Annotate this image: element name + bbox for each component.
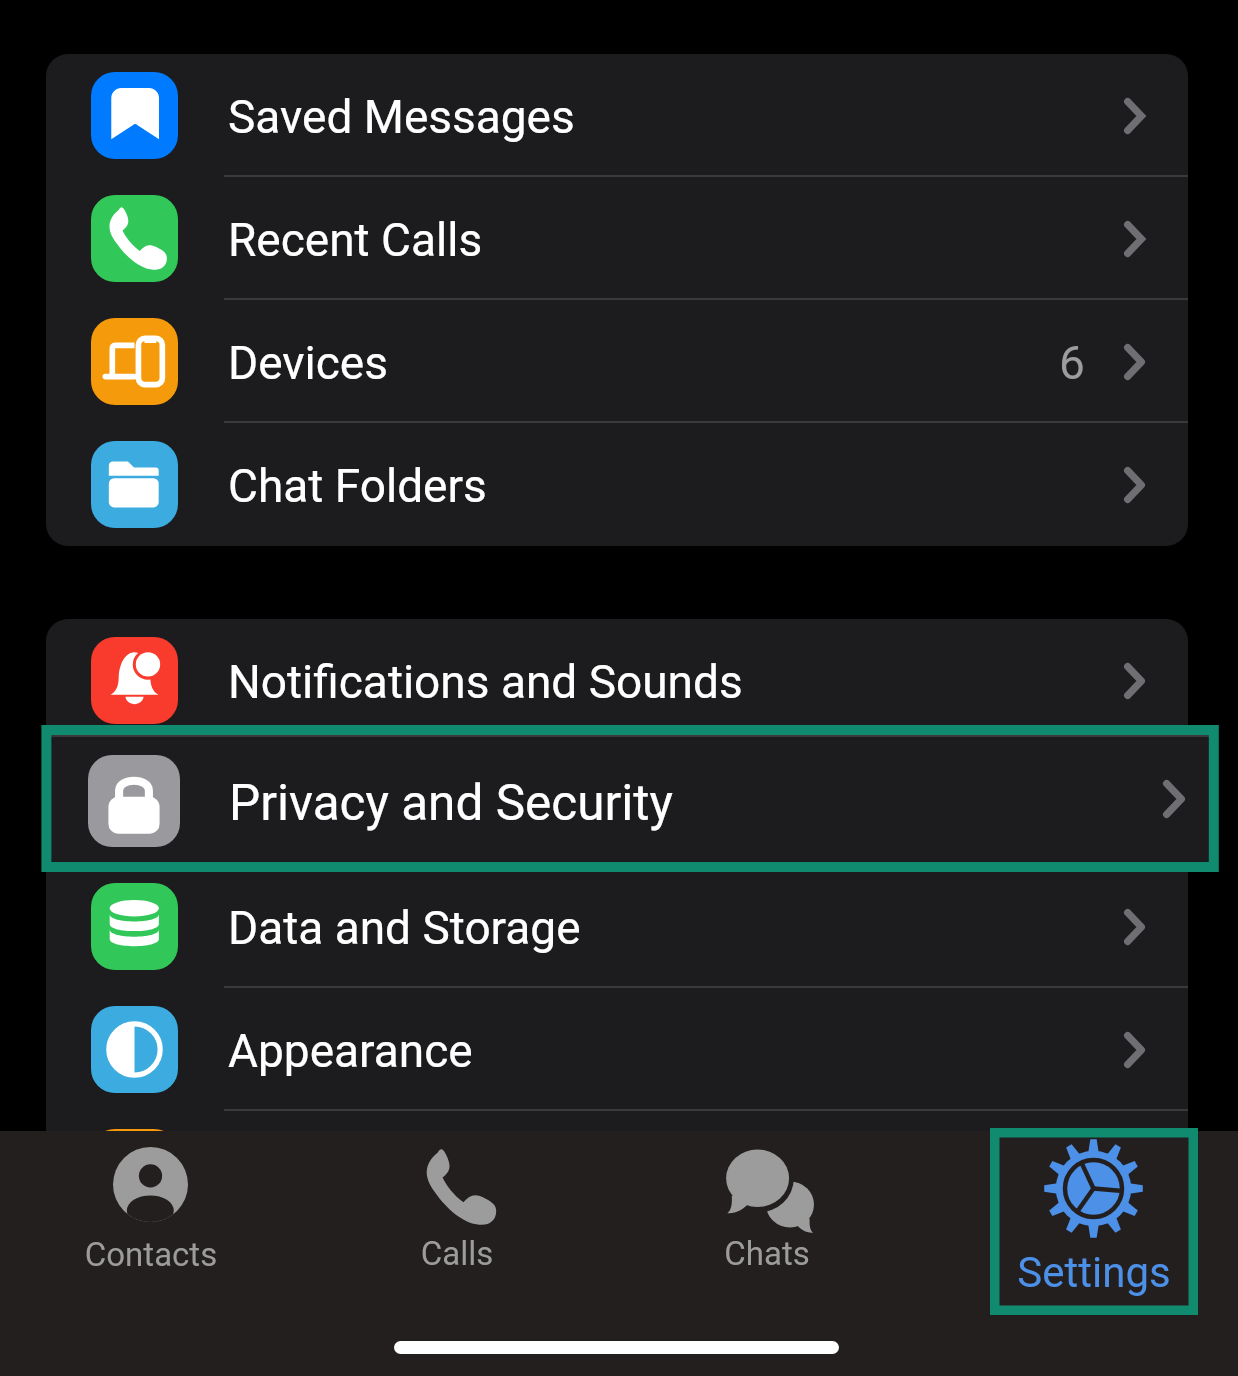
other: Chats (720, 1143, 814, 1237)
other: Contacts (113, 1147, 188, 1222)
staticText: Chats (567, 1234, 967, 1273)
button[interactable]: Language (46, 1111, 1188, 1234)
button[interactable] (939, 1131, 1238, 1376)
staticText: 6 (1059, 336, 1085, 390)
staticText: Recent Calls (228, 213, 483, 267)
button[interactable]: Chat Folders (46, 423, 1188, 546)
staticText: Notifications and Sounds (228, 655, 743, 709)
staticText: Devices (228, 336, 388, 390)
button[interactable] (0, 1131, 306, 1376)
button[interactable]: Data and Storage (46, 865, 1188, 988)
staticText: Calls (257, 1234, 657, 1273)
button[interactable]: Saved Messages (46, 54, 1188, 177)
staticText: Privacy and Security (228, 778, 641, 832)
staticText: Contacts (0, 1235, 351, 1274)
staticText: Chat Folders (228, 459, 487, 513)
staticText: Saved Messages (228, 90, 575, 144)
staticText: Appearance (228, 1024, 473, 1078)
button[interactable]: Recent Calls (46, 177, 1188, 300)
button[interactable] (302, 1131, 612, 1376)
staticText: Data and Storage (228, 901, 581, 955)
button[interactable]: Privacy and Security (46, 742, 1188, 865)
other: Settings (1044, 1139, 1143, 1238)
button[interactable]: Appearance (46, 988, 1188, 1111)
button[interactable]: Devices (46, 300, 1188, 423)
button[interactable]: Privacy and Security (51, 735, 1209, 863)
other: Calls (417, 1147, 497, 1227)
button[interactable] (612, 1131, 922, 1376)
button[interactable]: Notifications and Sounds (46, 619, 1188, 742)
staticText: Language (228, 1147, 430, 1201)
staticText: Privacy and Security (229, 774, 673, 832)
staticText: Settings (894, 1248, 1238, 1297)
